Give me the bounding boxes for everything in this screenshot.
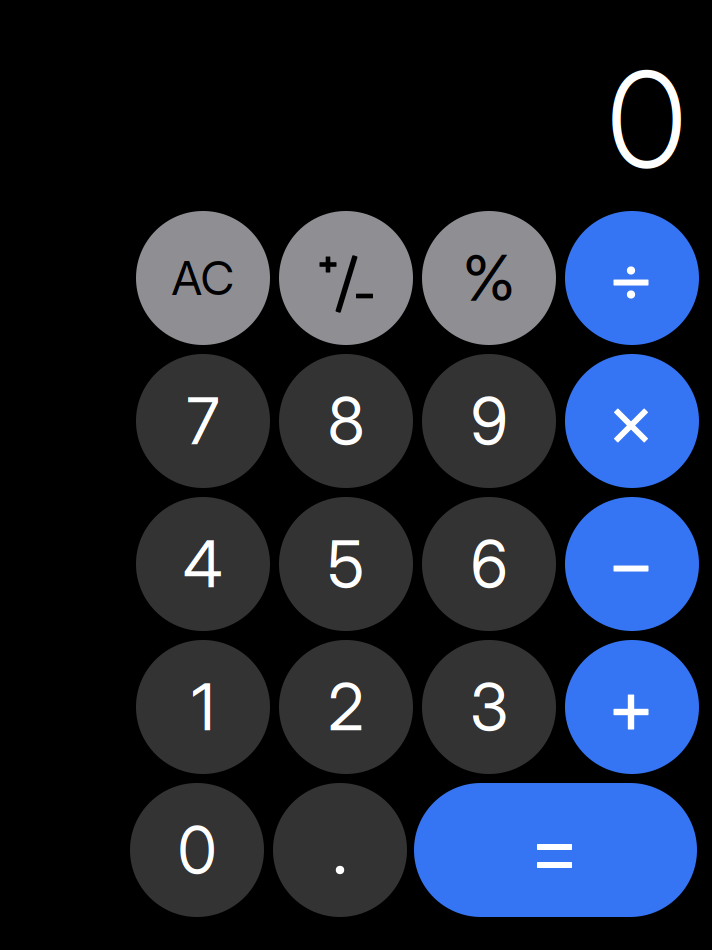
staticText: 0 bbox=[177, 811, 216, 889]
button[interactable]: AC bbox=[136, 211, 270, 345]
staticText: 9 bbox=[470, 382, 507, 460]
staticText: 1 bbox=[191, 668, 214, 746]
button[interactable]: Toggle sign bbox=[279, 211, 413, 345]
staticText: 2 bbox=[328, 668, 364, 746]
button[interactable]: Multiply bbox=[565, 354, 699, 488]
button[interactable]: % bbox=[422, 211, 556, 345]
button[interactable]: 0 bbox=[130, 783, 264, 917]
button[interactable]: Divide bbox=[565, 211, 699, 345]
staticText: 8 bbox=[327, 382, 364, 460]
staticText: 3 bbox=[470, 668, 508, 746]
staticText: AC bbox=[171, 250, 234, 306]
button[interactable]: 9 bbox=[422, 354, 556, 488]
button[interactable]: 5 bbox=[279, 497, 413, 631]
staticText: 6 bbox=[470, 525, 507, 603]
button[interactable]: 1 bbox=[136, 640, 270, 774]
button[interactable]: 2 bbox=[279, 640, 413, 774]
button[interactable]: 3 bbox=[422, 640, 556, 774]
button[interactable]: 4 bbox=[136, 497, 270, 631]
button[interactable]: 8 bbox=[279, 354, 413, 488]
staticText: 0 bbox=[607, 39, 686, 200]
staticText: 4 bbox=[183, 525, 223, 603]
button[interactable]: Equals bbox=[414, 783, 697, 917]
staticText: 5 bbox=[327, 525, 364, 603]
button[interactable]: 7 bbox=[136, 354, 270, 488]
button[interactable]: Plus bbox=[565, 640, 699, 774]
button[interactable]: 6 bbox=[422, 497, 556, 631]
staticText: % bbox=[462, 240, 515, 316]
staticText: 7 bbox=[186, 382, 219, 460]
button[interactable]: Minus bbox=[565, 497, 699, 631]
button[interactable]: Decimal point bbox=[273, 783, 407, 917]
